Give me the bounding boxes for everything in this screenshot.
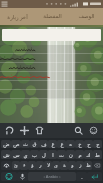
button[interactable]: س <box>11 150 21 159</box>
staticText: ر <box>39 163 42 169</box>
staticText: خ <box>78 141 82 147</box>
button[interactable]: ء <box>20 161 28 170</box>
button[interactable]: Emoji <box>86 123 101 138</box>
staticText: . <box>81 173 83 180</box>
button[interactable]: Theme <box>32 123 47 138</box>
button[interactable]: آخر زيارة <box>0 13 35 27</box>
button[interactable]: ز <box>76 161 84 170</box>
button[interactable] <box>0 72 103 81</box>
button[interactable]: م <box>75 150 84 159</box>
button[interactable]: ة <box>60 161 68 170</box>
staticText: ا <box>52 152 54 158</box>
staticText: ح <box>87 141 91 147</box>
staticText: ه <box>69 141 72 147</box>
staticText: ء <box>23 163 26 169</box>
button[interactable]: ف <box>39 140 48 148</box>
button[interactable]: ر <box>36 161 44 170</box>
button[interactable]: ه <box>66 140 75 148</box>
button[interactable]: المفضلة <box>35 13 69 27</box>
staticText: آخر زيارة <box>7 13 28 20</box>
button[interactable] <box>0 54 103 63</box>
button[interactable] <box>92 161 102 170</box>
button[interactable]: Search <box>71 123 86 138</box>
staticText: ث <box>23 141 28 147</box>
button[interactable]: خ <box>75 140 84 148</box>
button[interactable] <box>0 81 103 90</box>
button[interactable]: ع <box>57 140 66 148</box>
staticText: س <box>13 152 20 158</box>
button[interactable]: ى <box>52 161 60 170</box>
staticText: ك <box>86 152 91 158</box>
button[interactable]: ا <box>48 150 57 159</box>
staticText: ق <box>32 141 37 147</box>
staticText: ش <box>3 152 10 158</box>
button[interactable] <box>0 45 103 54</box>
button[interactable]: ص <box>11 140 21 148</box>
button[interactable]: ت <box>57 150 66 159</box>
button[interactable]: ن <box>66 150 75 159</box>
button[interactable]: ك <box>84 150 93 159</box>
staticText: المفضلة <box>43 13 62 19</box>
button[interactable] <box>1 161 12 170</box>
staticText: ب <box>32 152 37 158</box>
button[interactable]: لا <box>44 161 52 170</box>
button[interactable]: Move cursor <box>17 123 32 138</box>
button[interactable]: ظ <box>84 161 92 170</box>
button[interactable]: ‹ Arabic › <box>28 172 76 181</box>
staticText: ن <box>69 152 73 158</box>
button[interactable] <box>17 172 28 181</box>
button[interactable]: ي <box>21 150 30 159</box>
staticText: الوصف <box>78 13 95 19</box>
button[interactable]: ض <box>1 140 11 148</box>
button[interactable]: و <box>68 161 76 170</box>
staticText: ز <box>79 163 82 169</box>
button[interactable]: ط <box>93 150 102 159</box>
staticText: ‹ Arabic › <box>43 174 61 180</box>
staticText: ل <box>42 152 46 158</box>
staticText: ظ <box>86 163 91 169</box>
staticText: ص <box>13 141 20 147</box>
button[interactable]: ب <box>30 150 39 159</box>
staticText: ي <box>23 152 28 158</box>
staticText: و <box>71 163 74 169</box>
button[interactable]: . <box>76 172 87 181</box>
staticText: ة <box>63 163 66 169</box>
staticText: ؤ <box>31 163 34 169</box>
staticText: ج <box>96 141 100 147</box>
staticText: م <box>78 152 82 158</box>
button[interactable]: Clipboard <box>2 123 17 138</box>
button[interactable]: ج <box>93 140 102 148</box>
staticText: ض <box>3 141 10 147</box>
staticText: ط <box>95 152 100 158</box>
button[interactable]: غ <box>48 140 57 148</box>
staticText: لا <box>47 163 50 169</box>
button[interactable]: ؤ <box>28 161 36 170</box>
button[interactable] <box>1 172 17 181</box>
button[interactable]: ث <box>21 140 30 148</box>
button[interactable] <box>0 90 103 99</box>
button[interactable] <box>0 63 103 72</box>
button[interactable]: ش <box>1 150 11 159</box>
button[interactable]: الوصف <box>69 13 103 27</box>
button[interactable]: ح <box>84 140 93 148</box>
staticText: ئ <box>14 163 18 169</box>
staticText: ع <box>60 141 64 147</box>
button[interactable]: ل <box>39 150 48 159</box>
button[interactable]: ق <box>30 140 39 148</box>
staticText: ف <box>41 141 47 147</box>
button[interactable] <box>87 172 102 181</box>
staticText: ى <box>54 163 58 169</box>
staticText: غ <box>51 141 55 147</box>
button[interactable]: ئ <box>12 161 20 170</box>
staticText: ت <box>59 152 64 158</box>
